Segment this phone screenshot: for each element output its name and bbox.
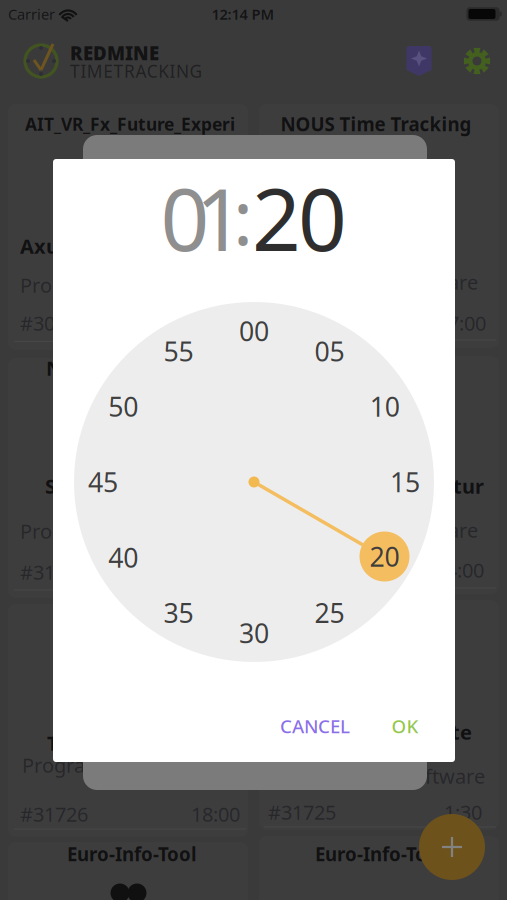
- staticText: Programmierung Software: [20, 272, 269, 298]
- staticText: Carrier: [8, 4, 55, 24]
- button[interactable]: 20: [359, 531, 409, 581]
- staticText: #30581: [20, 310, 88, 336]
- staticText: 2: [252, 161, 301, 275]
- staticText: REDMINE: [70, 41, 159, 65]
- button[interactable]: 25: [309, 593, 349, 633]
- staticText: 7:00: [448, 310, 486, 336]
- staticText: Projektmanagement Software: [206, 763, 485, 789]
- button[interactable]: 15: [385, 462, 425, 502]
- staticText: Ticket_Verwaltung: [47, 730, 233, 756]
- staticText: 05: [314, 333, 344, 369]
- staticText: 18:00: [191, 801, 240, 827]
- button[interactable]: 45: [83, 462, 123, 502]
- staticText: Euro-Info-Tool: [67, 842, 197, 866]
- staticText: 1:30: [444, 799, 482, 825]
- staticText: 0: [298, 161, 347, 275]
- staticText: TIMETRACKING: [70, 59, 202, 82]
- staticText: 0: [160, 161, 209, 275]
- staticText: 12:14 PM: [211, 4, 274, 24]
- staticText: Axudos_App_Evaluation: [20, 233, 257, 259]
- staticText: #31726: [20, 801, 88, 827]
- button[interactable]: 05: [309, 331, 349, 371]
- staticText: 45: [88, 464, 118, 500]
- button[interactable]: [462, 46, 492, 76]
- button[interactable]: OK: [380, 706, 430, 746]
- staticText: AIT_VR_Fx_Future_Experi: [25, 112, 235, 135]
- staticText: Programmierung Software: [229, 269, 478, 295]
- staticText: 4:00: [446, 557, 484, 583]
- staticText: 10: [370, 389, 400, 424]
- staticText: 35: [163, 595, 193, 630]
- button[interactable]: 00: [234, 311, 274, 351]
- staticText: NOUS_Kundenprojekte: [243, 719, 472, 745]
- staticText: Systemarchitektur: [297, 473, 484, 499]
- staticText: #31644: [20, 559, 88, 585]
- button[interactable]: 50: [103, 386, 143, 426]
- button[interactable]: [419, 814, 485, 880]
- button[interactable]: 30: [234, 613, 274, 653]
- staticText: 1: [195, 161, 244, 275]
- staticText: 15: [390, 464, 420, 500]
- staticText: NOUS_Relaunch_24: [46, 355, 234, 381]
- staticText: Programmierung Software: [22, 752, 271, 778]
- staticText: 00: [239, 313, 269, 349]
- staticText: Euro-Info-Tool: [315, 842, 445, 866]
- button[interactable]: 40: [103, 537, 143, 577]
- staticText: CANCEL: [280, 714, 350, 738]
- button[interactable]: 35: [158, 593, 198, 633]
- button[interactable]: 10: [365, 386, 405, 426]
- staticText: OK: [391, 714, 418, 738]
- staticText: Serverarchitektur_24: [45, 473, 253, 499]
- button[interactable]: CANCEL: [270, 706, 360, 746]
- button[interactable]: [406, 46, 431, 76]
- staticText: #31725: [268, 799, 336, 825]
- button[interactable]: 55: [158, 331, 198, 371]
- staticText: 55: [163, 333, 193, 369]
- button[interactable]: 2: [252, 183, 345, 253]
- staticText: :: [233, 166, 253, 266]
- staticText: #31619: [268, 310, 336, 336]
- staticText: 20: [369, 539, 399, 574]
- staticText: 50: [108, 389, 138, 424]
- staticText: Programmierung Software: [20, 518, 269, 544]
- staticText: 40: [108, 540, 138, 575]
- button[interactable]: 0: [156, 183, 249, 253]
- staticText: Programmierung Software: [229, 517, 478, 543]
- staticText: 30: [239, 615, 269, 651]
- staticText: 25: [314, 595, 344, 630]
- staticText: NOUS Time Tracking: [280, 112, 471, 136]
